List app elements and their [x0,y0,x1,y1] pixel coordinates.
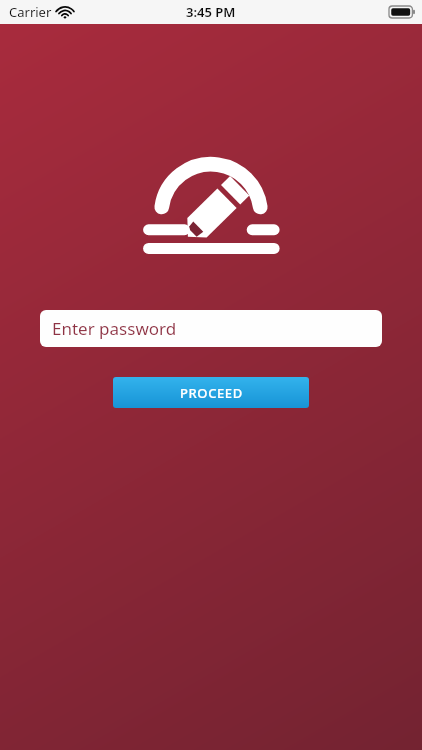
other: App logo [141,152,281,256]
staticText: 3:45 PM [186,3,236,21]
staticText: PROCEED [180,384,243,402]
staticText: Carrier [9,3,52,21]
button[interactable]: PROCEED [113,377,309,408]
button[interactable]: Enter password [40,310,382,347]
staticText: Enter password [52,317,177,340]
